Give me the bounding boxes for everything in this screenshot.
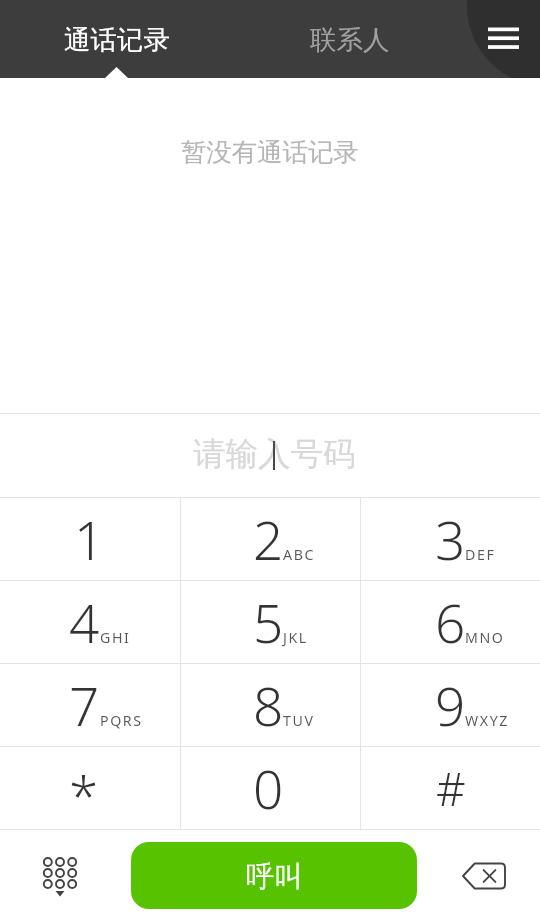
staticText: 1 bbox=[74, 503, 105, 575]
staticText: 请输入号码 bbox=[193, 434, 356, 475]
staticText: 联系人 bbox=[310, 23, 390, 56]
button[interactable]: 联系人 bbox=[233, 0, 466, 78]
staticText: JKL bbox=[283, 628, 308, 647]
button[interactable]: 7 bbox=[0, 664, 180, 746]
staticText: 8 bbox=[253, 669, 284, 741]
staticText: GHI bbox=[100, 628, 131, 647]
staticText: ABC bbox=[283, 545, 316, 564]
button[interactable]: 9 bbox=[361, 664, 540, 746]
staticText: * bbox=[69, 759, 99, 831]
button[interactable]: Hide keypad bbox=[20, 847, 100, 907]
staticText: 6 bbox=[435, 586, 466, 658]
button[interactable]: 6 bbox=[361, 581, 540, 663]
button[interactable]: 2 bbox=[181, 498, 360, 580]
button[interactable]: * bbox=[0, 747, 180, 829]
button[interactable]: 8 bbox=[181, 664, 360, 746]
staticText: 通话记录 bbox=[64, 23, 170, 56]
button[interactable]: 4 bbox=[0, 581, 180, 663]
staticText: 9 bbox=[435, 669, 466, 741]
staticText: # bbox=[436, 757, 466, 820]
button[interactable]: 通话记录 bbox=[0, 0, 233, 78]
staticText: 4 bbox=[69, 586, 100, 658]
button[interactable]: Backspace bbox=[444, 850, 524, 910]
button[interactable]: 5 bbox=[181, 581, 360, 663]
button[interactable]: 3 bbox=[361, 498, 540, 580]
staticText: WXYZ bbox=[465, 711, 510, 730]
staticText: TUV bbox=[283, 711, 315, 730]
staticText: 暂没有通话记录 bbox=[181, 137, 359, 169]
button[interactable]: # bbox=[361, 747, 540, 829]
staticText: 0 bbox=[253, 752, 284, 824]
button[interactable]: 0 bbox=[181, 747, 360, 829]
staticText: 呼叫 bbox=[246, 859, 303, 895]
button[interactable]: Menu bbox=[466, 0, 540, 78]
staticText: PQRS bbox=[100, 711, 143, 730]
staticText: DEF bbox=[465, 545, 496, 564]
staticText: 2 bbox=[253, 503, 284, 575]
button[interactable]: 1 bbox=[0, 498, 180, 580]
staticText: 7 bbox=[69, 669, 100, 741]
button[interactable]: 呼叫 bbox=[131, 842, 417, 909]
staticText: MNO bbox=[465, 628, 505, 647]
staticText: 3 bbox=[435, 503, 466, 575]
staticText: 5 bbox=[253, 586, 284, 658]
